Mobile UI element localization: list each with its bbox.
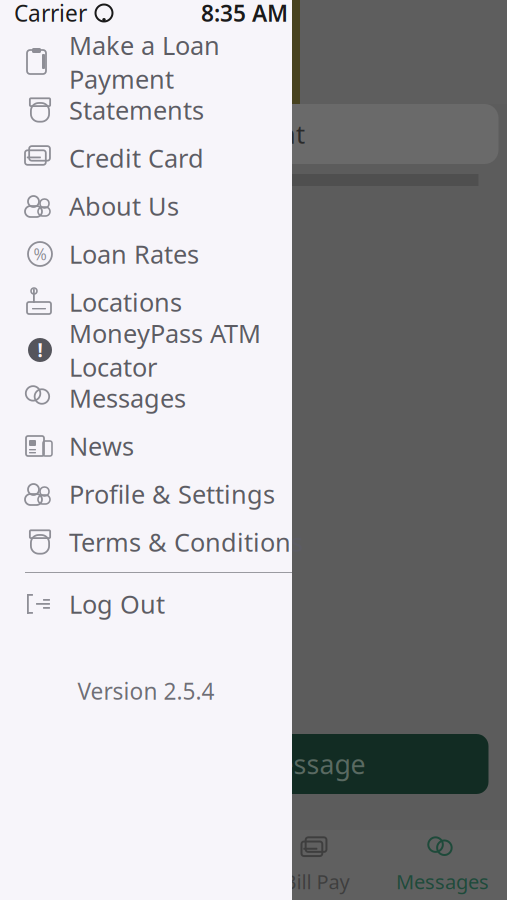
button[interactable]: % (0, 230, 317, 278)
staticText: Sent (252, 117, 305, 151)
button[interactable]: Bill Pay (253, 830, 379, 900)
staticText: About Us (69, 189, 179, 223)
staticText: Loan Rates (69, 237, 199, 271)
button[interactable]: Profile & Settings (0, 470, 317, 518)
staticText: 8:35 AM (201, 0, 288, 28)
button[interactable]: News (0, 422, 317, 470)
staticText: New Message (191, 746, 365, 782)
staticText: Version 2.5.4 (77, 676, 214, 706)
staticText: News (69, 429, 134, 463)
button[interactable]: Log Out (0, 580, 317, 628)
button[interactable]: Locations (0, 278, 317, 326)
staticText: Your inbox is empty (53, 316, 290, 350)
staticText: Credit Card (69, 141, 204, 175)
staticText: ! (37, 338, 42, 362)
staticText: Log Out (69, 587, 165, 621)
staticText: Bill Pay (283, 868, 349, 895)
staticText: Profile & Settings (69, 477, 275, 511)
staticText: Make a Loan Payment (69, 28, 220, 96)
button[interactable]: ! (0, 326, 317, 374)
staticText: MoneyPass ATM Locator (69, 316, 261, 384)
staticText: Locations (69, 285, 182, 319)
button[interactable]: Make a Loan Payment (0, 38, 317, 86)
staticText: Terms & Conditions (69, 525, 303, 559)
staticText: Statements (69, 93, 204, 127)
staticText: Messages (396, 868, 489, 895)
button[interactable]: Messages (379, 830, 505, 900)
button[interactable]: Messages (0, 374, 317, 422)
staticText: % (33, 243, 46, 265)
button[interactable]: Statements (0, 86, 317, 134)
button[interactable]: Credit Card (0, 134, 317, 182)
staticText: Messages (69, 381, 186, 415)
staticText: Carrier (14, 0, 87, 28)
button[interactable]: Terms & Conditions (0, 518, 317, 566)
button[interactable]: About Us (0, 182, 317, 230)
